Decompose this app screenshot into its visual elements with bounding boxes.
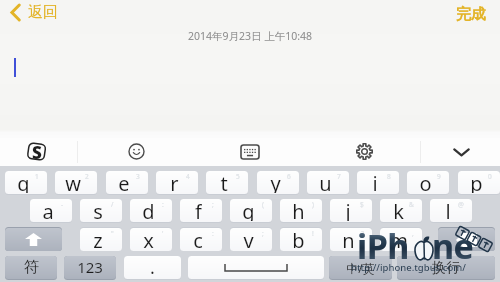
staticText: & bbox=[409, 200, 414, 209]
button[interactable]: o bbox=[407, 171, 449, 194]
staticText: / bbox=[111, 200, 114, 209]
staticText: ; bbox=[212, 200, 214, 209]
staticText: ) bbox=[312, 200, 314, 209]
button[interactable]: u bbox=[307, 171, 349, 194]
button[interactable]: x bbox=[130, 228, 172, 251]
staticText: r bbox=[170, 171, 179, 193]
staticText: x bbox=[143, 228, 154, 250]
button[interactable]: l bbox=[430, 199, 472, 222]
staticText: ne bbox=[432, 223, 474, 269]
staticText: t bbox=[220, 171, 228, 193]
staticText: @ bbox=[458, 200, 464, 209]
button[interactable]: d bbox=[130, 199, 172, 222]
staticText: ( bbox=[262, 200, 264, 209]
staticText: " bbox=[111, 229, 114, 238]
staticText: 2014年9月23日 上午10:48 bbox=[188, 29, 313, 43]
staticText: h bbox=[292, 199, 305, 221]
staticText: 换行 bbox=[432, 259, 460, 277]
button[interactable]: g bbox=[230, 199, 272, 222]
button[interactable]: 123 bbox=[64, 256, 116, 279]
staticText: a bbox=[42, 199, 54, 221]
staticText: . bbox=[150, 256, 155, 278]
staticText: 符 bbox=[24, 258, 39, 277]
button[interactable]: Shift bbox=[5, 228, 62, 251]
button[interactable]: z bbox=[80, 228, 122, 251]
button[interactable]: 换行 bbox=[397, 256, 495, 279]
staticText: ; bbox=[262, 229, 264, 238]
button[interactable]: Sogou input method bbox=[26, 141, 47, 163]
button[interactable]: v bbox=[230, 228, 272, 251]
staticText: 123 bbox=[77, 257, 103, 277]
button[interactable]: y bbox=[257, 171, 299, 194]
staticText: p bbox=[470, 171, 483, 193]
staticText: ' bbox=[162, 229, 164, 238]
button[interactable]: Hide keyboard bbox=[452, 146, 471, 158]
staticText: w bbox=[65, 171, 81, 193]
button[interactable]: Space bbox=[188, 256, 324, 279]
button[interactable]: 完成 bbox=[453, 3, 489, 26]
button[interactable]: m bbox=[380, 228, 422, 251]
staticText: f bbox=[195, 199, 202, 221]
button[interactable]: e bbox=[106, 171, 148, 194]
button[interactable]: 符 bbox=[5, 256, 57, 279]
button[interactable]: p bbox=[458, 171, 500, 194]
staticText: S bbox=[32, 141, 42, 163]
staticText: b bbox=[292, 228, 305, 250]
staticText: 中/英 bbox=[346, 260, 375, 276]
staticText: 完成 bbox=[456, 5, 486, 24]
button[interactable]: i bbox=[357, 171, 399, 194]
staticText: 8 bbox=[387, 172, 391, 181]
button[interactable]: Settings bbox=[356, 143, 373, 160]
button[interactable]: c bbox=[180, 228, 222, 251]
button[interactable]: Backspace bbox=[438, 228, 495, 251]
button[interactable]: h bbox=[280, 199, 322, 222]
button[interactable]: r bbox=[156, 171, 198, 194]
button[interactable]: w bbox=[55, 171, 97, 194]
button[interactable]: a bbox=[30, 199, 72, 222]
staticText: 1 bbox=[35, 172, 39, 181]
staticText: s bbox=[93, 199, 103, 221]
button[interactable]: Emoji bbox=[128, 143, 145, 160]
staticText: 6 bbox=[287, 172, 291, 181]
staticText: g bbox=[242, 199, 255, 221]
staticText: ? bbox=[361, 229, 364, 238]
staticText: c bbox=[193, 228, 203, 250]
button[interactable]: b bbox=[280, 228, 322, 251]
other: Backspace bbox=[456, 233, 477, 247]
staticText: y bbox=[270, 171, 281, 193]
staticText: 3 bbox=[136, 172, 140, 181]
staticText: 5 bbox=[236, 172, 240, 181]
staticText: http://iphone.tgbus.com/ bbox=[351, 261, 466, 274]
staticText: 2 bbox=[85, 172, 89, 181]
button[interactable]: k bbox=[380, 199, 422, 222]
staticText: m bbox=[389, 228, 408, 250]
button[interactable]: . bbox=[124, 256, 181, 279]
other: Shift bbox=[25, 233, 42, 246]
staticText: , bbox=[412, 229, 414, 238]
button[interactable]: j bbox=[330, 199, 372, 222]
staticText: o bbox=[419, 171, 432, 193]
staticText: e bbox=[118, 171, 130, 193]
staticText: j bbox=[345, 199, 351, 221]
staticText: k bbox=[393, 199, 404, 221]
staticText: 0 bbox=[488, 172, 492, 181]
staticText: v bbox=[243, 228, 254, 250]
button[interactable]: 返回 bbox=[8, 1, 61, 24]
staticText: 4 bbox=[186, 172, 190, 181]
staticText: ! bbox=[312, 229, 314, 238]
staticText: d bbox=[142, 199, 155, 221]
staticText: : bbox=[162, 200, 164, 209]
staticText: 返回 bbox=[28, 3, 58, 22]
staticText: - bbox=[61, 200, 64, 209]
button[interactable]: 中/英 bbox=[329, 256, 392, 279]
button[interactable]: q bbox=[5, 171, 47, 194]
button[interactable]: Keyboard layout bbox=[241, 145, 259, 159]
staticText: 9 bbox=[437, 172, 441, 181]
button[interactable]: n bbox=[330, 228, 372, 251]
staticText: iPh bbox=[357, 223, 409, 269]
staticText: l bbox=[445, 199, 451, 221]
button[interactable]: f bbox=[180, 199, 222, 222]
staticText: i bbox=[372, 171, 378, 193]
button[interactable]: t bbox=[206, 171, 248, 194]
button[interactable]: s bbox=[80, 199, 122, 222]
